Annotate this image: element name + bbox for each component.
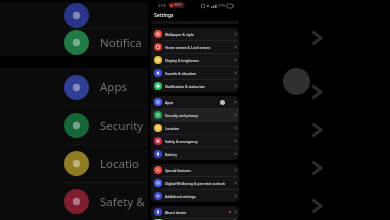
staticText: Notification & status bar [165,84,233,89]
button[interactable]: Display & brightness [151,54,239,66]
staticText: Safety & [100,194,145,210]
staticText: 00:01 [174,3,183,7]
other: Open [233,82,237,90]
other: Open [233,69,237,77]
other: Open [233,192,237,200]
button[interactable]: Digital Wellbeing & parental controls [151,177,239,189]
other: Open [233,43,237,51]
other: Open [233,166,237,174]
staticText: Security and privacy [165,113,233,118]
button[interactable]: Security and privacy [151,109,239,121]
other: Open [233,219,237,220]
button[interactable]: About device [151,206,239,218]
other: Open [233,30,237,38]
staticText: Settings [154,12,174,19]
other: Open [233,179,237,187]
staticText: Location [165,126,233,131]
staticText: Notifica [100,35,142,51]
other: Open [233,111,237,119]
other: Open [233,150,237,158]
button[interactable]: Sounds & vibration [151,67,239,79]
button[interactable]: Home screen & Lock screen [151,41,239,53]
button[interactable]: Safety & emergency [151,135,239,147]
button[interactable]: Additional settings [151,190,239,202]
staticText: 2:05 [158,3,166,8]
staticText: Apps [165,100,233,105]
staticText: Security [100,118,144,134]
button[interactable]: Notification & status bar [151,80,239,92]
staticText: Display & brightness [165,58,233,63]
staticText: Sounds & vibration [165,71,233,76]
staticText: 27% [218,3,226,8]
button[interactable]: Google [151,219,239,220]
button[interactable]: Battery [151,148,239,160]
staticText: Apps [100,79,128,95]
other: Open [233,98,237,106]
other: Open [233,137,237,145]
staticText: Battery [165,152,233,157]
staticText: Special features [165,168,233,173]
staticText: Wallpaper & style [165,32,233,37]
staticText: Additional settings [165,194,233,199]
button[interactable]: Apps [151,96,239,108]
other: Open [233,124,237,132]
staticText: About device [165,210,229,215]
button[interactable]: Wallpaper & style [151,28,239,40]
other: Open [233,56,237,64]
other: Open [233,208,237,216]
staticText: Safety & emergency [165,139,233,144]
button[interactable]: Special features [151,164,239,176]
staticText: Home screen & Lock screen [165,45,233,50]
staticText: Locatio [100,156,140,172]
staticText: Digital Wellbeing & parental controls [165,181,233,186]
button[interactable]: Location [151,122,239,134]
